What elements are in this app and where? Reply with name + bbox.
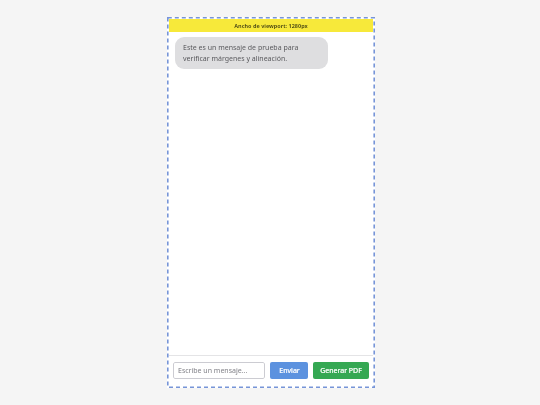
staticText: Este es un mensaje de prueba para verifi…	[183, 43, 320, 63]
staticText: Ancho de viewport: 1280px	[234, 22, 308, 29]
button[interactable]: Escribe un mensaje...	[173, 362, 265, 379]
button[interactable]: Este es un mensaje de prueba para verifi…	[175, 37, 328, 69]
staticText: Escribe un mensaje...	[178, 366, 248, 376]
staticText: Enviar	[279, 366, 300, 376]
button[interactable]: Generar PDF	[313, 362, 369, 379]
staticText: Generar PDF	[320, 366, 362, 376]
button[interactable]: Enviar	[270, 362, 308, 379]
